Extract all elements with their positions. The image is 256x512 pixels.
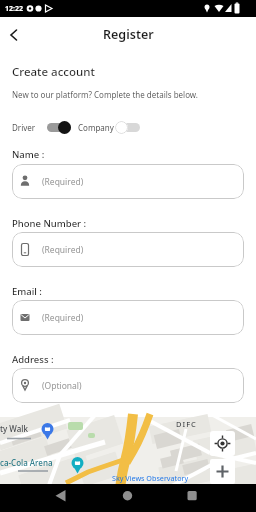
button[interactable]	[210, 431, 235, 456]
button[interactable]	[0, 484, 86, 512]
staticText: Register	[103, 26, 154, 43]
staticText: Email :	[12, 285, 42, 297]
button[interactable]: (Required)	[12, 300, 244, 335]
button[interactable]	[46, 121, 71, 134]
button[interactable]: (Required)	[12, 232, 244, 267]
staticText: 12:22	[5, 4, 23, 14]
button[interactable]: (Optional)	[12, 368, 244, 403]
staticText: Create account	[12, 64, 95, 80]
staticText: (Required)	[42, 312, 84, 324]
staticText: ty Walk	[0, 423, 28, 434]
button[interactable]: ty Walk	[0, 417, 256, 484]
staticText: Address :	[12, 353, 54, 365]
button[interactable]	[210, 459, 235, 484]
staticText: Company	[78, 122, 114, 133]
button[interactable]	[0, 21, 28, 49]
button[interactable]	[115, 121, 140, 134]
staticText: (Required)	[42, 244, 84, 256]
button[interactable]: (Required)	[12, 164, 244, 199]
staticText: (Required)	[42, 176, 84, 188]
staticText: Name :	[12, 148, 45, 160]
staticText: DIFC	[176, 419, 197, 429]
staticText: (Optional)	[42, 380, 82, 392]
button[interactable]	[86, 484, 171, 512]
staticText: Driver	[12, 122, 36, 133]
staticText: Sky Views Observatory	[112, 473, 189, 483]
staticText: New to our platform? Complete the detail…	[12, 89, 198, 100]
staticText: Phone Number :	[12, 217, 87, 229]
button[interactable]	[171, 484, 256, 512]
staticText: ca-Cola Arena	[0, 457, 53, 468]
